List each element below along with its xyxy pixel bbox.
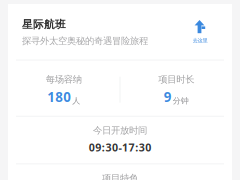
staticText: 项目时长 — [158, 74, 194, 85]
staticText: 分钟 — [173, 96, 189, 106]
staticText: 探寻外太空奥秘的奇遇冒险旅程 — [22, 35, 148, 47]
staticText: 项目特色 — [102, 172, 138, 180]
staticText: 每场容纳 — [46, 74, 82, 85]
staticText: 人 — [72, 96, 80, 106]
staticText: 180 — [47, 88, 71, 106]
staticText: 9 — [164, 88, 172, 106]
button[interactable]: 去这里 — [185, 18, 215, 44]
staticText: 09:30-17:30 — [89, 140, 151, 154]
staticText: 去这里 — [192, 37, 207, 44]
staticText: 星际航班 — [22, 18, 66, 31]
staticText: 今日开放时间 — [93, 125, 147, 136]
